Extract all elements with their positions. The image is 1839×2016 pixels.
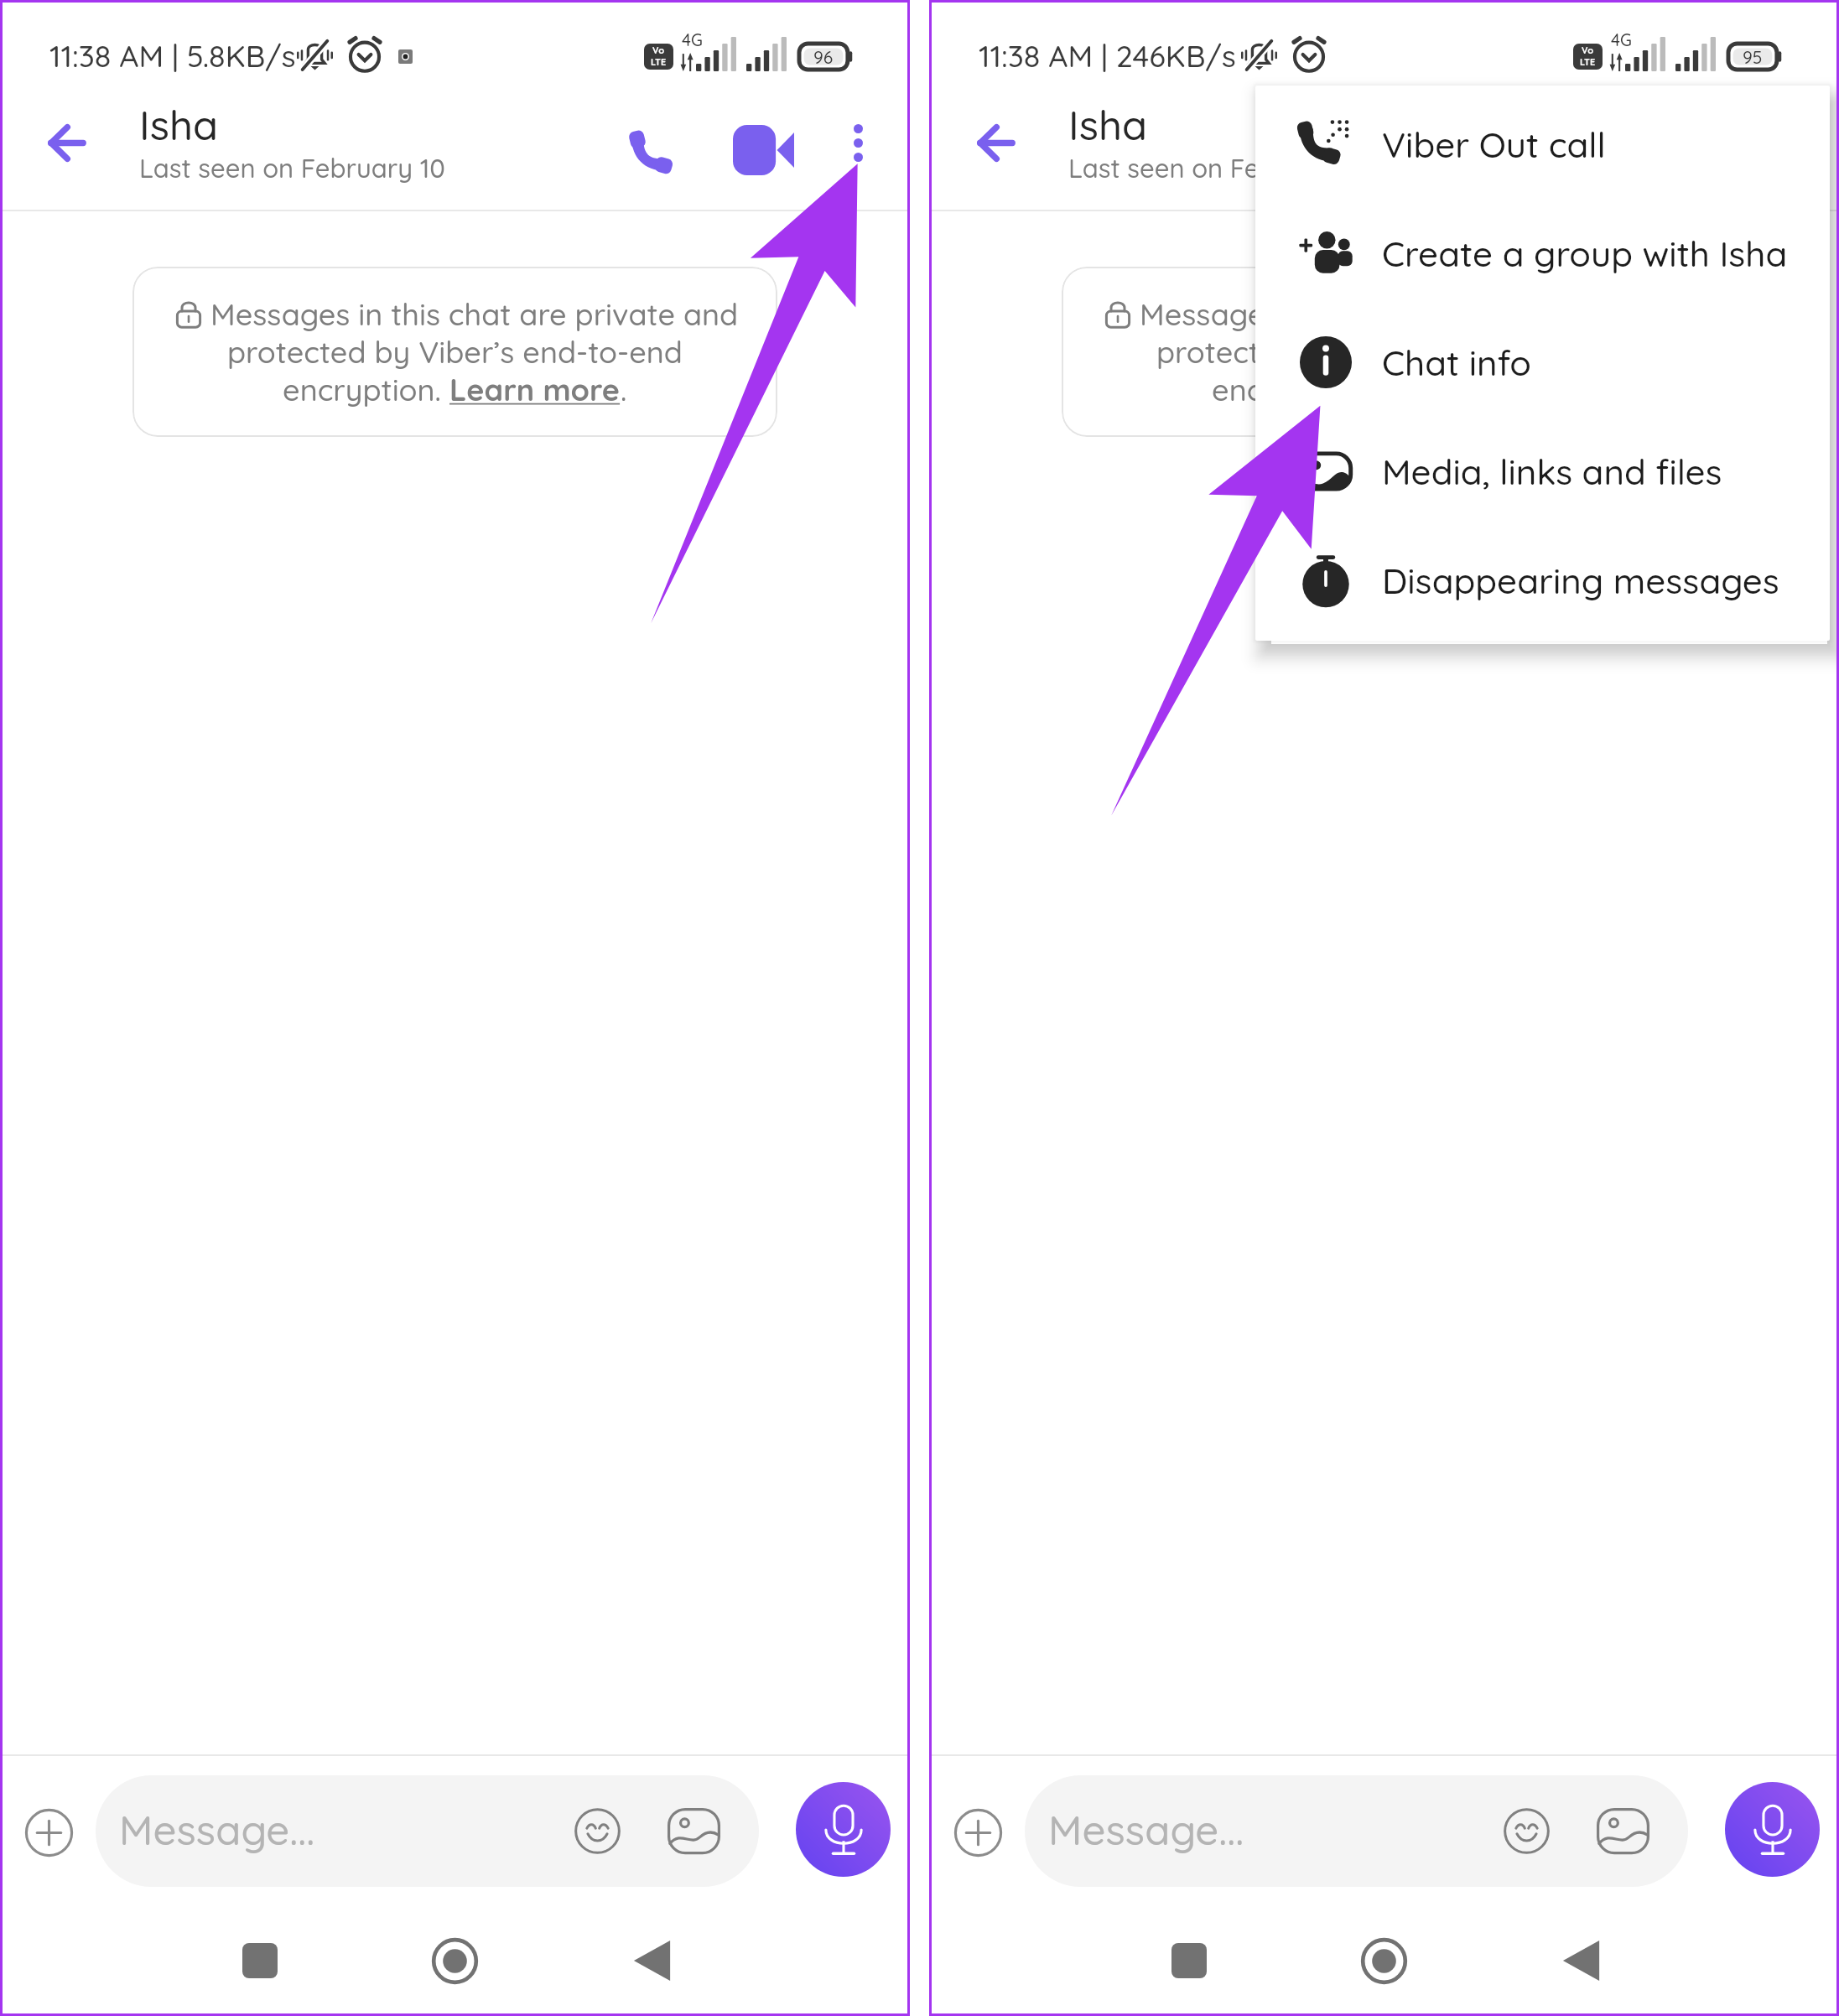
staticText: protected by Viber’s end-to-end [227, 333, 683, 371]
staticText: Disappearing messages [1382, 559, 1779, 603]
staticText: Isha [1068, 99, 1148, 150]
button[interactable]: Create a group with Isha [1255, 199, 1830, 308]
button[interactable]: Home [409, 1915, 500, 2006]
button[interactable]: Messages in this chat are private and [1062, 267, 1707, 437]
staticText: Vo [652, 44, 665, 56]
button[interactable]: Back [1535, 1915, 1626, 2006]
button[interactable]: Add attachment [938, 1792, 1018, 1873]
staticText: Messages in this chat are private and [1140, 295, 1668, 333]
staticText: Create a group with Isha [1382, 231, 1788, 276]
button[interactable]: Recents [1144, 1915, 1234, 2006]
button[interactable]: Media, links and files [1255, 417, 1830, 526]
button[interactable]: Recents [215, 1915, 305, 2006]
staticText: 4G [682, 29, 703, 50]
button[interactable]: Back [606, 1915, 697, 2006]
staticText: 11:38 AM | 5.8KB/s [49, 37, 296, 75]
staticText: Chat info [1382, 340, 1531, 385]
button[interactable]: Record voice message [1725, 1782, 1820, 1877]
button[interactable]: Home [1338, 1915, 1429, 2006]
staticText: Learn more [1379, 371, 1550, 408]
button[interactable]: Disappearing messages [1255, 526, 1830, 635]
staticText: 11:38 AM | 246KB/s [979, 37, 1236, 75]
staticText: 96 [813, 46, 834, 68]
button[interactable]: Message... [96, 1775, 759, 1887]
staticText: Learn more [449, 371, 621, 408]
staticText: Last seen on February 10 [139, 152, 445, 184]
button[interactable]: Viber Out call [1255, 90, 1830, 199]
staticText: encryption. [1212, 371, 1379, 408]
button[interactable]: Video call [716, 103, 810, 197]
staticText: Last seen on February 10 [1068, 152, 1374, 184]
button[interactable]: Record voice message [796, 1782, 891, 1877]
button[interactable]: Chat info [1255, 308, 1830, 417]
staticText: LTE [1580, 56, 1596, 68]
button[interactable]: Messages in this chat are private and [132, 267, 777, 437]
button[interactable]: Back [932, 100, 1059, 211]
staticText: . [621, 371, 627, 408]
staticText: Vo [1582, 44, 1594, 56]
button[interactable]: Back [3, 100, 130, 211]
button[interactable]: Voice call [604, 104, 698, 198]
staticText: encryption. [283, 371, 449, 408]
staticText: Messages in this chat are private and [210, 295, 739, 333]
staticText: 4G [1611, 29, 1632, 50]
button[interactable]: Message... [1025, 1775, 1688, 1887]
staticText: protected by Viber’s end-to-end [1156, 333, 1612, 371]
staticText: Message... [1048, 1804, 1244, 1855]
button[interactable]: More options [818, 100, 898, 211]
staticText: Isha [139, 99, 219, 150]
staticText: LTE [651, 56, 667, 68]
button[interactable]: Add attachment [8, 1792, 89, 1873]
staticText: Viber Out call [1382, 122, 1606, 167]
staticText: 95 [1743, 46, 1763, 68]
staticText: Message... [119, 1804, 315, 1855]
staticText: Media, links and files [1382, 449, 1722, 494]
